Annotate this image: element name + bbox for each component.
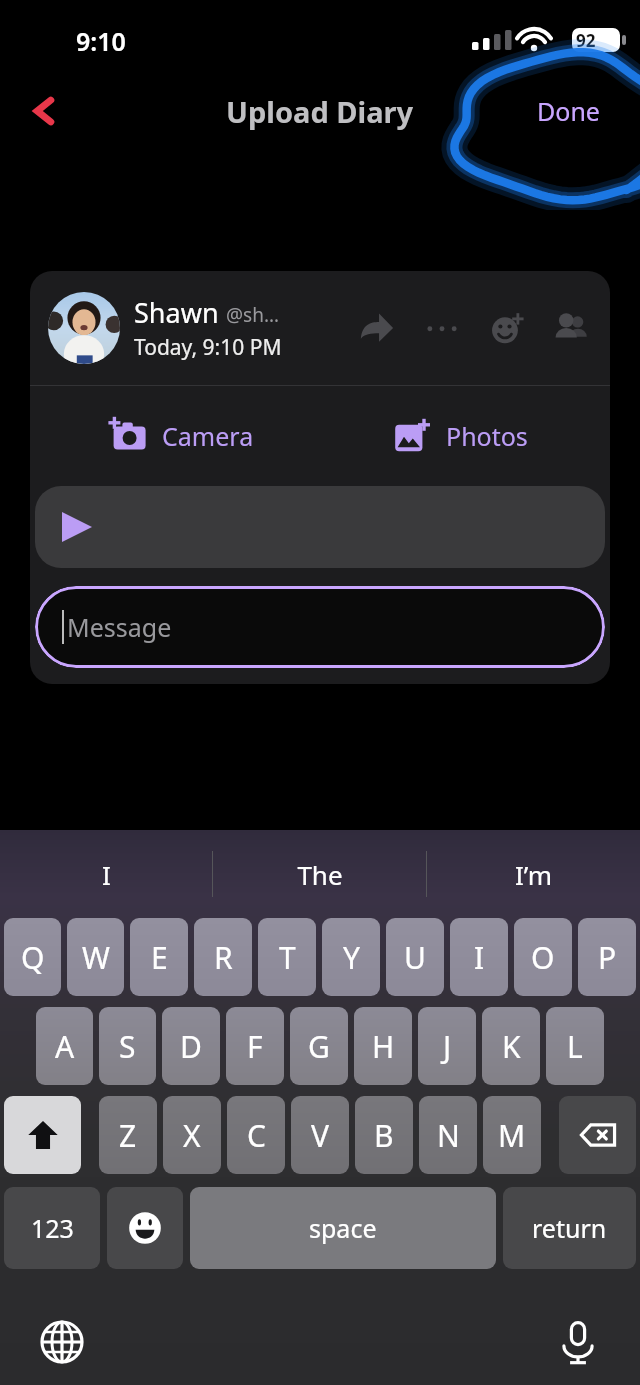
button[interactable]: W — [67, 918, 124, 996]
button[interactable]: 123 — [4, 1187, 100, 1269]
staticText: I’m — [515, 857, 552, 892]
button[interactable]: N — [419, 1096, 477, 1174]
button[interactable]: Dictation — [546, 1310, 610, 1374]
button[interactable]: O — [514, 918, 572, 996]
button[interactable] — [35, 486, 605, 568]
button[interactable]: L — [546, 1007, 604, 1085]
staticText: H — [372, 1026, 395, 1067]
staticText: S — [119, 1026, 136, 1067]
staticText: 123 — [31, 1211, 74, 1245]
button[interactable]: I — [0, 830, 212, 918]
staticText: The — [297, 857, 343, 892]
staticText: Upload Diary — [226, 92, 414, 131]
staticText: I — [474, 937, 485, 978]
button[interactable]: Shift — [4, 1096, 81, 1174]
button[interactable]: S — [99, 1007, 156, 1085]
staticText: K — [502, 1026, 521, 1067]
staticText: N — [437, 1115, 460, 1156]
staticText: Shawn — [134, 294, 219, 331]
button[interactable]: V — [291, 1096, 349, 1174]
staticText: return — [532, 1211, 607, 1245]
staticText: I — [102, 857, 111, 892]
staticText: A — [55, 1026, 75, 1067]
button[interactable]: X — [163, 1096, 221, 1174]
button[interactable]: R — [194, 918, 252, 996]
staticText: 92 — [576, 29, 596, 52]
button[interactable]: T — [258, 918, 316, 996]
staticText: E — [151, 937, 168, 978]
button[interactable]: Done — [527, 86, 610, 136]
button[interactable]: A — [36, 1007, 93, 1085]
button[interactable]: I’m — [427, 830, 640, 918]
button[interactable]: Camera — [30, 386, 320, 486]
button[interactable]: return — [503, 1187, 636, 1269]
button[interactable]: Z — [99, 1096, 157, 1174]
button[interactable]: Backspace — [559, 1096, 636, 1174]
button[interactable]: G — [290, 1007, 348, 1085]
button[interactable]: space — [190, 1187, 496, 1269]
staticText: D — [180, 1026, 202, 1067]
staticText: L — [567, 1026, 583, 1067]
staticText: R — [214, 937, 233, 978]
staticText: Done — [537, 94, 600, 128]
button[interactable]: Y — [322, 918, 380, 996]
staticText: @sh… — [226, 302, 279, 328]
staticText: F — [247, 1026, 263, 1067]
staticText: 9:10 — [76, 24, 126, 58]
staticText: M — [498, 1115, 526, 1156]
button[interactable]: P — [578, 918, 636, 996]
staticText: space — [309, 1211, 377, 1245]
button[interactable]: H — [354, 1007, 412, 1085]
button[interactable]: Contacts — [548, 306, 592, 350]
staticText: Z — [119, 1115, 137, 1156]
staticText: Camera — [162, 419, 254, 453]
button[interactable]: Add sticker — [486, 306, 530, 350]
button[interactable]: More options — [420, 306, 464, 350]
staticText: J — [443, 1026, 452, 1067]
button[interactable]: Back — [14, 81, 74, 141]
button[interactable]: Photos — [320, 386, 610, 486]
button[interactable]: U — [386, 918, 444, 996]
staticText: X — [183, 1115, 201, 1156]
button[interactable]: F — [226, 1007, 284, 1085]
button[interactable]: Change keyboard — [30, 1310, 94, 1374]
staticText: Message — [67, 610, 172, 644]
button[interactable]: The — [213, 830, 426, 918]
button[interactable]: E — [130, 918, 188, 996]
staticText: Today, 9:10 PM — [134, 333, 282, 362]
button[interactable]: K — [482, 1007, 540, 1085]
staticText: C — [247, 1115, 266, 1156]
staticText: V — [311, 1115, 329, 1156]
staticText: W — [82, 937, 110, 978]
button[interactable]: Q — [4, 918, 61, 996]
staticText: G — [308, 1026, 330, 1067]
button[interactable]: B — [355, 1096, 413, 1174]
staticText: Photos — [446, 419, 528, 453]
button[interactable]: C — [227, 1096, 285, 1174]
staticText: O — [531, 937, 555, 978]
button[interactable]: I — [450, 918, 508, 996]
button[interactable]: Share — [354, 306, 398, 350]
staticText: Q — [21, 937, 45, 978]
button[interactable]: M — [483, 1096, 541, 1174]
button[interactable]: D — [162, 1007, 220, 1085]
button[interactable]: Message — [35, 586, 605, 668]
staticText: U — [404, 937, 426, 978]
staticText: T — [279, 937, 296, 978]
button[interactable]: Emoji — [107, 1187, 183, 1269]
button[interactable]: J — [418, 1007, 476, 1085]
staticText: B — [374, 1115, 394, 1156]
staticText: P — [598, 937, 617, 978]
staticText: Y — [343, 937, 360, 978]
